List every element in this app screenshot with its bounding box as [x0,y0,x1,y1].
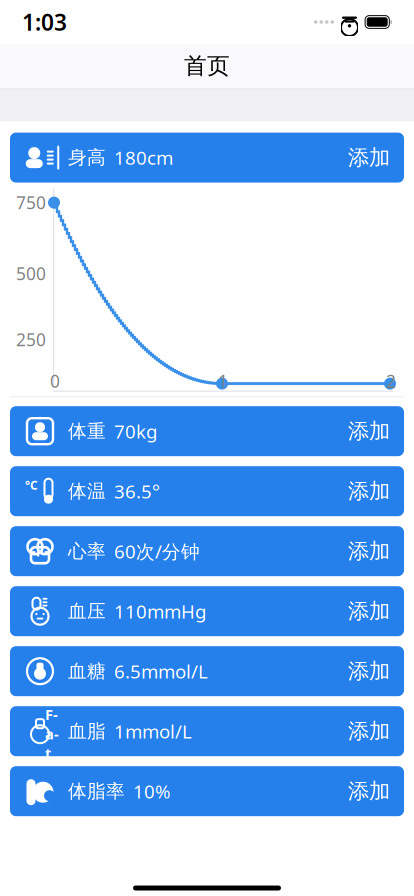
button[interactable]: °C [10,466,404,516]
staticText: 6.5mmol/L [114,659,208,684]
staticText: °C [25,477,38,493]
button[interactable]: 体重 [10,406,404,456]
staticText: 10% [133,779,171,804]
staticText: 70kg [114,419,157,444]
button[interactable]: 心率 [10,526,404,576]
button[interactable]: 血糖 [10,646,404,696]
staticText: 体脂率 [68,780,125,803]
staticText: 首页 [184,52,230,80]
staticText: 体重 [68,420,106,443]
staticText: 添加 [348,718,390,744]
staticText: 1mmol/L [114,719,192,744]
staticText: 血压 [68,600,106,623]
staticText: 血糖 [68,660,106,683]
staticText: 添加 [348,658,390,684]
staticText: 1:03 [22,7,67,37]
staticText: 体温 [68,480,106,503]
staticText: 110mmHg [114,599,206,624]
staticText: 0 [50,370,60,393]
staticText: 心率 [68,540,106,563]
staticText: 添加 [348,478,390,504]
staticText: 添加 [348,144,390,171]
staticText: 60次/分钟 [114,539,200,564]
button[interactable]: 体脂率 [10,766,404,816]
button[interactable]: Fat [10,706,404,756]
staticText: Fat [45,704,59,763]
button[interactable]: 血压 [10,586,404,636]
staticText: 添加 [348,778,390,804]
staticText: 500 [16,262,46,285]
staticText: 750 [16,191,46,214]
staticText: 36.5° [114,479,160,504]
button[interactable]: 身高 [10,133,404,183]
staticText: 添加 [348,538,390,564]
staticText: 180cm [114,145,173,170]
staticText: 添加 [348,598,390,624]
staticText: 2 [386,370,396,393]
staticText: 添加 [348,418,390,444]
staticText: 1 [218,370,228,393]
staticText: 血脂 [68,720,106,743]
staticText: 250 [16,328,46,351]
staticText: 身高 [68,146,106,169]
